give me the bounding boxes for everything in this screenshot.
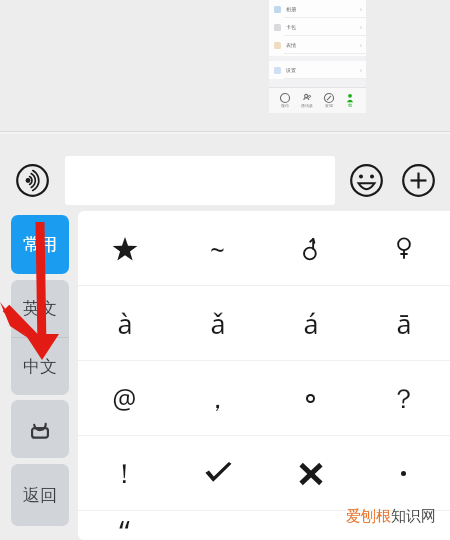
button[interactable]: à [78,286,171,361]
button[interactable] [357,436,450,511]
staticText: 发现 [325,103,333,108]
button[interactable] [78,211,171,286]
button[interactable]: 表情 [269,36,366,54]
button[interactable]: ？ [357,361,450,436]
button[interactable]: ǎ [171,286,264,361]
button[interactable] [264,436,357,511]
button[interactable] [357,511,450,540]
button[interactable] [264,211,357,286]
staticText: 返回 [23,485,57,506]
button[interactable]: á [264,286,357,361]
button[interactable]: 常用 [11,215,69,274]
staticText: 微信 [281,103,289,108]
staticText: 中文 [23,356,57,377]
staticText: › [360,23,362,31]
button[interactable]: 中文 [11,338,69,395]
button[interactable]: 通讯录 [301,93,313,108]
staticText: › [360,66,362,74]
staticText: @ [112,380,137,417]
staticText: 设置 [286,67,296,73]
staticText: ！ [111,457,138,491]
staticText: 卡包 [286,24,296,30]
button[interactable]: Voice input [16,164,49,197]
button[interactable]: ā [357,286,450,361]
staticText: 常用 [23,234,57,255]
staticText: 通讯录 [301,103,313,108]
button[interactable] [357,211,450,286]
staticText: à [117,305,133,342]
staticText: 知识网 [391,507,436,526]
button[interactable]: Emoji [350,164,383,197]
button[interactable] [171,436,264,511]
staticText: 爱刨根 [346,507,391,526]
staticText: 我 [348,103,352,108]
button[interactable]: 返回 [11,464,69,526]
staticText: ？ [390,382,417,416]
staticText: “ [119,511,130,540]
button[interactable]: 相册 [269,0,366,18]
staticText: ， [204,382,231,416]
staticText: › [360,41,362,49]
staticText: á [303,305,319,342]
button[interactable]: 设置 [269,61,366,79]
button[interactable]: 我 [345,93,355,108]
button[interactable]: ~ [171,211,264,286]
button[interactable] [264,361,357,436]
staticText: ǎ [210,305,226,342]
button[interactable]: 卡包 [269,18,366,36]
button[interactable]: “ [78,511,171,540]
staticText: › [360,5,362,13]
staticText: 表情 [286,42,296,48]
button[interactable]: ， [171,361,264,436]
button[interactable]: @ [78,361,171,436]
staticText: 相册 [286,6,296,12]
staticText: 英文 [23,298,57,319]
button[interactable]: 发现 [324,93,334,108]
staticText: ā [396,305,412,342]
button[interactable]: ！ [78,436,171,511]
button[interactable] [264,511,357,540]
button[interactable]: 英文 [11,280,69,337]
staticText: ~ [210,231,225,266]
button[interactable]: 微信 [280,93,290,108]
button[interactable]: Lock keyboard [11,400,69,458]
button[interactable]: More [402,164,435,197]
